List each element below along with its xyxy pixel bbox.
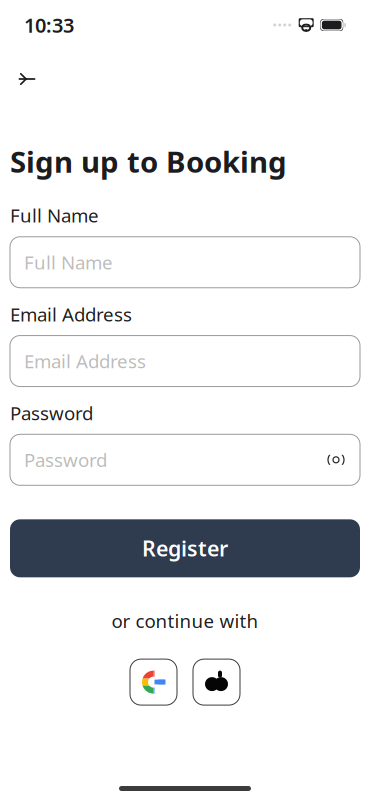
staticText: Email Address: [10, 302, 132, 326]
button[interactable]: Password: [10, 434, 360, 485]
staticText: Full Name: [10, 203, 99, 228]
staticText: or continue with: [111, 608, 258, 633]
button[interactable]: Full Name: [10, 237, 360, 288]
button[interactable]: Email Address: [10, 335, 360, 386]
staticText: Full Name: [24, 250, 113, 275]
button[interactable]: Continue with Apple: [193, 659, 240, 705]
staticText: Password: [10, 400, 93, 425]
button[interactable]: Back: [10, 62, 44, 96]
staticText: Password: [24, 447, 107, 472]
staticText: Sign up to Booking: [10, 142, 287, 181]
staticText: Register: [142, 534, 228, 562]
button[interactable]: Continue with Google: [130, 659, 177, 705]
staticText: 10:33: [24, 12, 74, 38]
button[interactable]: Register: [10, 519, 360, 577]
staticText: Email Address: [24, 349, 146, 373]
